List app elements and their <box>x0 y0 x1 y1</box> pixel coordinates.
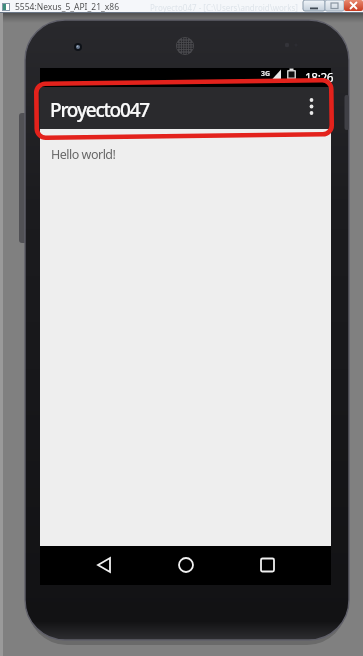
button[interactable] <box>300 94 324 120</box>
staticText: 18:26 <box>305 69 334 85</box>
staticText: Proyecto047 - [C:\Users\android\works] - <box>150 2 305 13</box>
button[interactable]: Proyecto047 <box>40 87 331 129</box>
button[interactable] <box>40 546 137 585</box>
staticText: 3G <box>261 69 271 79</box>
button[interactable] <box>234 546 331 585</box>
staticText: 5554:Nexus_5_API_21_x86 <box>15 1 119 13</box>
staticText: Hello world! <box>51 146 116 163</box>
staticText: Proyecto047 <box>50 97 150 123</box>
button[interactable] <box>137 546 234 585</box>
